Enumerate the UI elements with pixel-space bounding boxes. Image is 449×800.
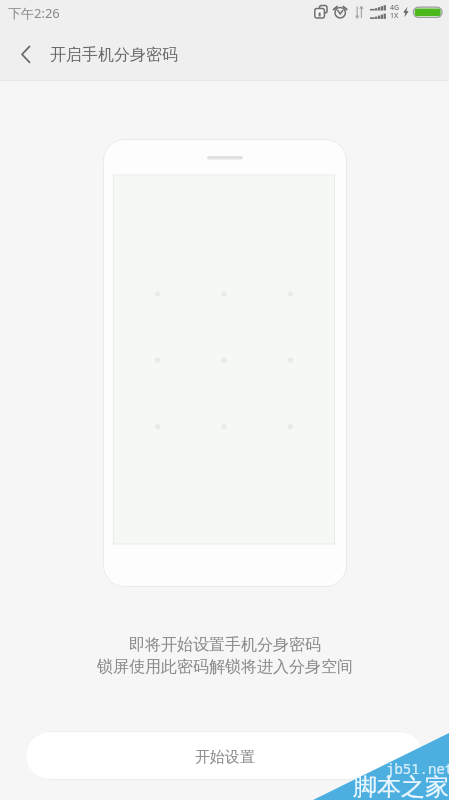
staticText: 脚本之家 (353, 772, 449, 800)
button[interactable]: 开始设置 (25, 731, 424, 780)
staticText: jb51.net (386, 759, 449, 778)
staticText: 下午2:26 (8, 4, 60, 22)
staticText: 锁屏使用此密码解锁将进入分身空间 (97, 657, 353, 677)
staticText: 即将开始设置手机分身密码 (129, 635, 321, 655)
button[interactable]: Back (2, 28, 50, 81)
staticText: 开始设置 (195, 748, 255, 767)
staticText: 1X (390, 11, 399, 21)
staticText: 开启手机分身密码 (50, 45, 178, 65)
staticText: 4G (390, 3, 400, 13)
